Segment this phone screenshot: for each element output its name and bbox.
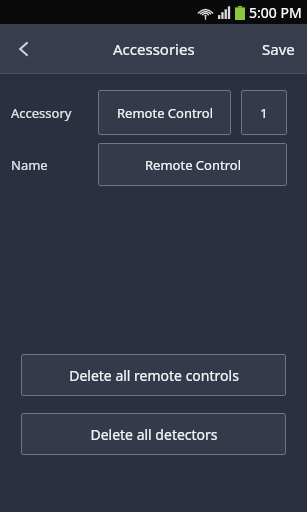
- staticText: Save: [262, 39, 295, 59]
- staticText: Accessory: [11, 104, 98, 122]
- button[interactable]: Back: [0, 25, 48, 73]
- staticText: 5:00 PM: [249, 3, 302, 22]
- staticText: Remote Control: [117, 104, 213, 122]
- button[interactable]: Save: [250, 24, 307, 73]
- staticText: Delete all remote controls: [69, 366, 239, 385]
- button[interactable]: 1: [241, 90, 287, 135]
- staticText: 1: [260, 104, 268, 122]
- staticText: Remote Control: [145, 156, 241, 174]
- staticText: Delete all detectors: [90, 425, 218, 444]
- button[interactable]: Delete all remote controls: [21, 354, 286, 396]
- button[interactable]: Delete all detectors: [21, 413, 286, 455]
- button[interactable]: Remote Control: [98, 90, 231, 135]
- staticText: Accessories: [113, 39, 195, 59]
- button[interactable]: Remote Control: [98, 143, 287, 186]
- staticText: Name: [11, 156, 98, 174]
